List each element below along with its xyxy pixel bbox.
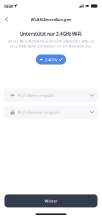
staticText: Unterstützt nur 2.4GHz Wi-Fi.: [20, 31, 82, 37]
staticText: 14:58: [3, 3, 12, 9]
staticText: Wi-Fi-Passwort eingeben: [17, 110, 59, 115]
staticText: WLAN-Einstellungen: [30, 17, 71, 22]
button[interactable]: Wi-Fi-Passwort eingeben: [3, 105, 98, 119]
staticText: ein 2.4GHz-Band und wählen Sie ein Netzw…: [9, 44, 92, 48]
staticText: Wi-Fi-Name eingeben: [17, 93, 54, 98]
staticText: 2.4GHz: [45, 57, 58, 62]
button[interactable]: Wi-Fi-Name eingeben: [3, 88, 98, 102]
button[interactable]: Weiter: [4, 194, 97, 207]
button[interactable]: Back: [0, 13, 12, 25]
staticText: Dieses Wi-Fi-Netzwerk wird nicht unterst…: [7, 39, 94, 43]
staticText: Weiter: [44, 198, 57, 203]
